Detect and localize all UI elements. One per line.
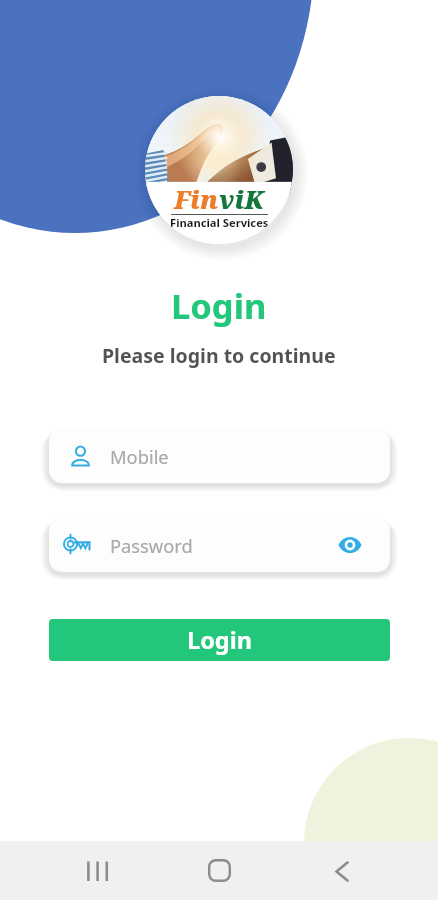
button[interactable]: Home <box>199 850 240 891</box>
staticText: Mobile <box>110 444 169 469</box>
staticText: Please login to continue <box>102 342 336 369</box>
staticText: viK <box>219 182 264 216</box>
button[interactable]: Show password <box>338 536 362 554</box>
staticText: Financial Services <box>170 215 269 230</box>
button[interactable]: Mobile <box>49 429 390 483</box>
button[interactable]: Back <box>322 851 362 891</box>
staticText: Login <box>171 282 267 329</box>
staticText: Login <box>187 624 252 656</box>
button[interactable]: Recent apps <box>77 851 117 891</box>
button[interactable]: Login <box>49 619 390 661</box>
staticText: Fin <box>174 182 219 216</box>
staticText: Password <box>110 533 193 558</box>
button[interactable]: Password <box>49 518 390 572</box>
